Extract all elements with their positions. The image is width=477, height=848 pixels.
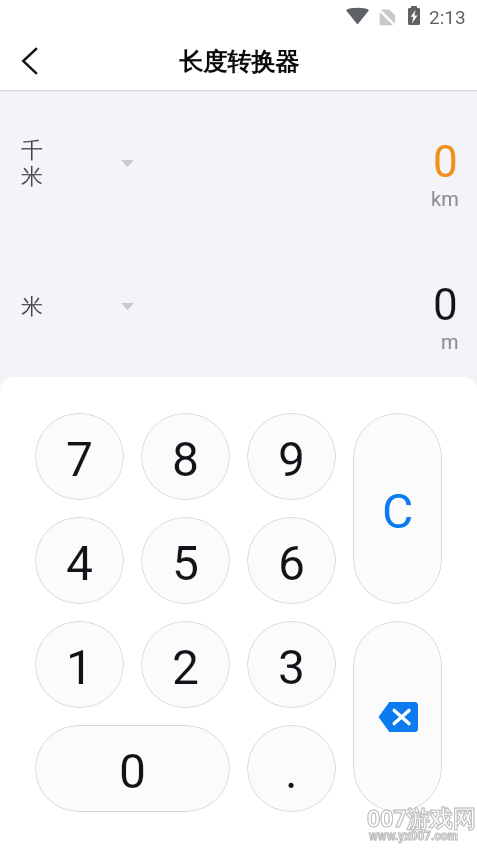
staticText: 5 [172, 535, 199, 591]
staticText: 8 [172, 431, 199, 487]
staticText: www.yx007.com [369, 829, 458, 843]
button[interactable]: 0 [35, 725, 230, 812]
staticText: 2 [172, 639, 199, 695]
button[interactable]: . [247, 725, 336, 812]
staticText: 3 [278, 639, 305, 695]
button[interactable]: 7 [35, 413, 124, 500]
button[interactable]: 5 [141, 517, 230, 604]
button[interactable]: 4 [35, 517, 124, 604]
button[interactable]: 2 [141, 621, 230, 708]
staticText: 9 [278, 431, 305, 487]
button[interactable]: C [353, 413, 442, 604]
staticText: 0 [119, 743, 146, 799]
button[interactable]: 千米 [0, 108, 477, 218]
button[interactable]: Back [5, 36, 53, 84]
staticText: 6 [278, 535, 305, 591]
staticText: km [431, 187, 459, 210]
button[interactable]: 8 [141, 413, 230, 500]
staticText: 0 [433, 279, 458, 331]
staticText: . [285, 743, 298, 799]
staticText: 4 [66, 535, 93, 591]
button[interactable]: 1 [35, 621, 124, 708]
staticText: 米 [21, 293, 43, 321]
button[interactable]: 6 [247, 517, 336, 604]
staticText: 0 [433, 136, 458, 188]
staticText: m [441, 330, 459, 353]
staticText: 1 [66, 639, 93, 695]
staticText: 2:13 [429, 6, 466, 28]
button[interactable]: Backspace [353, 621, 442, 812]
staticText: 千米 [21, 137, 45, 191]
button[interactable]: 9 [247, 413, 336, 500]
staticText: 7 [66, 431, 93, 487]
staticText: 007游戏网 [367, 802, 476, 833]
staticText: 长度转换器 [179, 47, 299, 77]
staticText: C [382, 483, 414, 539]
button[interactable]: 米 [0, 251, 477, 361]
button[interactable]: 3 [247, 621, 336, 708]
